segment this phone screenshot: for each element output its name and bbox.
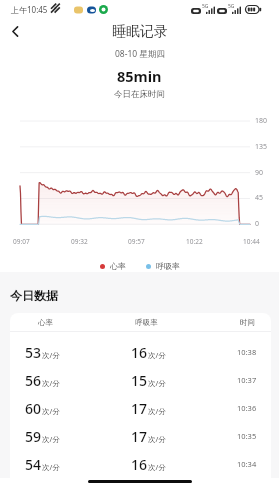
staticText: 54 <box>25 455 42 474</box>
staticText: 16 <box>131 455 148 474</box>
button[interactable]: 59 <box>10 422 271 450</box>
staticText: 5G <box>228 3 235 10</box>
staticText: 10:37 <box>237 375 257 385</box>
button[interactable]: 53 <box>10 338 271 366</box>
staticText: 10:38 <box>237 347 257 357</box>
staticText: 次/分 <box>148 462 166 472</box>
staticText: 60 <box>25 399 42 418</box>
staticText: 次/分 <box>148 434 166 444</box>
staticText: 次/分 <box>42 350 60 360</box>
staticText: 90 <box>255 168 264 178</box>
staticText: 呼吸率 <box>135 318 158 327</box>
staticText: 次/分 <box>42 378 60 388</box>
staticText: 135 <box>255 142 268 152</box>
button[interactable]: 60 <box>10 394 271 422</box>
staticText: 心率 <box>110 261 126 271</box>
staticText: 59 <box>25 427 42 446</box>
staticText: 45 <box>255 193 264 203</box>
staticText: 53 <box>25 343 42 362</box>
staticText: 10:34 <box>237 459 257 469</box>
staticText: 10:22 <box>186 237 203 246</box>
staticText: 09:32 <box>71 237 88 246</box>
button[interactable]: 56 <box>10 366 271 394</box>
staticText: 今日数据 <box>10 288 58 303</box>
staticText: 16 <box>131 343 148 362</box>
staticText: 56 <box>25 371 42 390</box>
staticText: 次/分 <box>42 462 60 472</box>
staticText: 心率 <box>38 318 53 327</box>
staticText: 次/分 <box>148 406 166 416</box>
staticText: 17 <box>131 427 148 446</box>
staticText: 08-10 星期四 <box>115 48 165 60</box>
staticText: 180 <box>255 116 268 126</box>
staticText: 次/分 <box>42 406 60 416</box>
staticText: 0 <box>255 219 260 229</box>
staticText: 5G <box>202 3 209 10</box>
button[interactable]: 返回 <box>0 18 30 45</box>
staticText: 10:44 <box>243 237 260 246</box>
button[interactable]: 54 <box>10 450 271 478</box>
staticText: 09:57 <box>128 237 145 246</box>
staticText: 今日在床时间 <box>114 89 165 100</box>
staticText: 次/分 <box>148 378 166 388</box>
staticText: 呼吸率 <box>156 261 180 271</box>
staticText: 次/分 <box>42 434 60 444</box>
staticText: 09:07 <box>13 237 30 246</box>
staticText: 17 <box>131 399 148 418</box>
staticText: 10:35 <box>237 431 257 441</box>
staticText: 次/分 <box>148 350 166 360</box>
staticText: 15 <box>131 371 148 390</box>
staticText: 上午10:45 <box>11 4 48 15</box>
staticText: 85min <box>117 66 162 86</box>
staticText: 睡眠记录 <box>112 23 168 41</box>
staticText: 时间 <box>240 318 255 327</box>
staticText: 10:36 <box>237 403 257 413</box>
